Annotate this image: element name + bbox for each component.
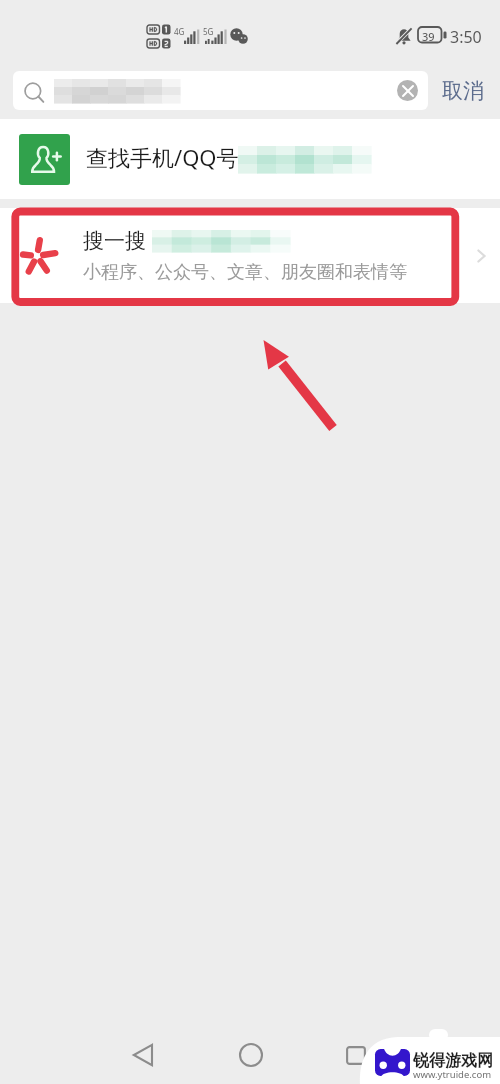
staticText: 查找手机/QQ号 [86,142,239,172]
button[interactable]: Back [110,1033,175,1077]
button[interactable]: 查找手机/QQ号 [0,119,500,199]
staticText: 搜一搜 [83,228,146,254]
staticText: 小程序、公众号、文章、朋友圈和表情等 [83,261,407,284]
staticText: 3:50 [450,26,482,48]
staticText: 4G [174,26,185,37]
staticText: www.ytruide.com [413,1068,492,1081]
button[interactable]: Clear [13,71,428,110]
button[interactable]: 取消 [428,71,492,110]
staticText: 取消 [442,78,484,104]
staticText: 锐得游戏网 [413,1051,493,1071]
button[interactable]: 搜一搜 [0,208,500,303]
button[interactable]: Recents [323,1033,388,1077]
staticText: 39 [422,29,435,44]
button[interactable]: Clear [397,80,418,101]
button[interactable]: Home [218,1033,283,1077]
button[interactable]: More [470,245,492,267]
staticText: 5G [203,26,214,37]
